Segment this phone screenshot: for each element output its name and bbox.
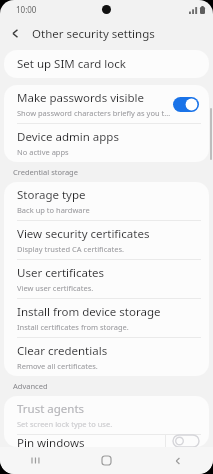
staticText: Show password characters briefly as you … bbox=[17, 108, 173, 118]
button[interactable]: Install from device storage bbox=[4, 299, 209, 337]
button[interactable]: User certificates bbox=[4, 260, 209, 298]
staticText: Make passwords visible bbox=[17, 90, 144, 106]
button[interactable]: Device admin apps bbox=[4, 124, 209, 162]
staticText: 10:00 bbox=[16, 4, 37, 15]
staticText: Credential storage bbox=[13, 167, 78, 177]
staticText: Set screen lock type to use. bbox=[17, 419, 113, 429]
button[interactable]: Trust agents bbox=[4, 396, 209, 434]
button[interactable]: Recents bbox=[0, 447, 71, 474]
staticText: View user certificates. bbox=[17, 283, 94, 293]
button[interactable]: Toggle off bbox=[173, 435, 199, 447]
staticText: Install certificates from storage. bbox=[17, 322, 129, 332]
staticText: Set up SIM card lock bbox=[17, 56, 126, 72]
staticText: User certificates bbox=[17, 265, 105, 281]
staticText: Storage type bbox=[17, 187, 86, 203]
staticText: View security certificates bbox=[17, 226, 150, 242]
staticText: Advanced bbox=[13, 381, 48, 391]
button[interactable]: Storage type bbox=[4, 182, 209, 220]
button[interactable]: Toggle on bbox=[173, 97, 199, 112]
button[interactable]: Make passwords visible bbox=[4, 85, 209, 123]
staticText: Install from device storage bbox=[17, 304, 161, 320]
staticText: Display trusted CA certificates. bbox=[17, 244, 124, 254]
staticText: Other security settings bbox=[32, 26, 155, 42]
staticText: No active apps bbox=[17, 147, 69, 157]
button[interactable]: Set up SIM card lock bbox=[4, 50, 209, 78]
button[interactable]: Back bbox=[0, 19, 30, 48]
staticText: Trust agents bbox=[17, 401, 85, 417]
button[interactable]: Pin windows bbox=[4, 435, 209, 447]
staticText: Clear credentials bbox=[17, 343, 108, 359]
button[interactable]: Back bbox=[142, 447, 213, 474]
button[interactable]: Clear credentials bbox=[4, 338, 209, 376]
staticText: Device admin apps bbox=[17, 129, 119, 145]
button[interactable]: View security certificates bbox=[4, 221, 209, 259]
staticText: Pin windows bbox=[17, 435, 85, 447]
staticText: Back up to hardware bbox=[17, 205, 90, 215]
staticText: Remove all certificates. bbox=[17, 361, 98, 371]
button[interactable]: Home bbox=[71, 447, 142, 474]
